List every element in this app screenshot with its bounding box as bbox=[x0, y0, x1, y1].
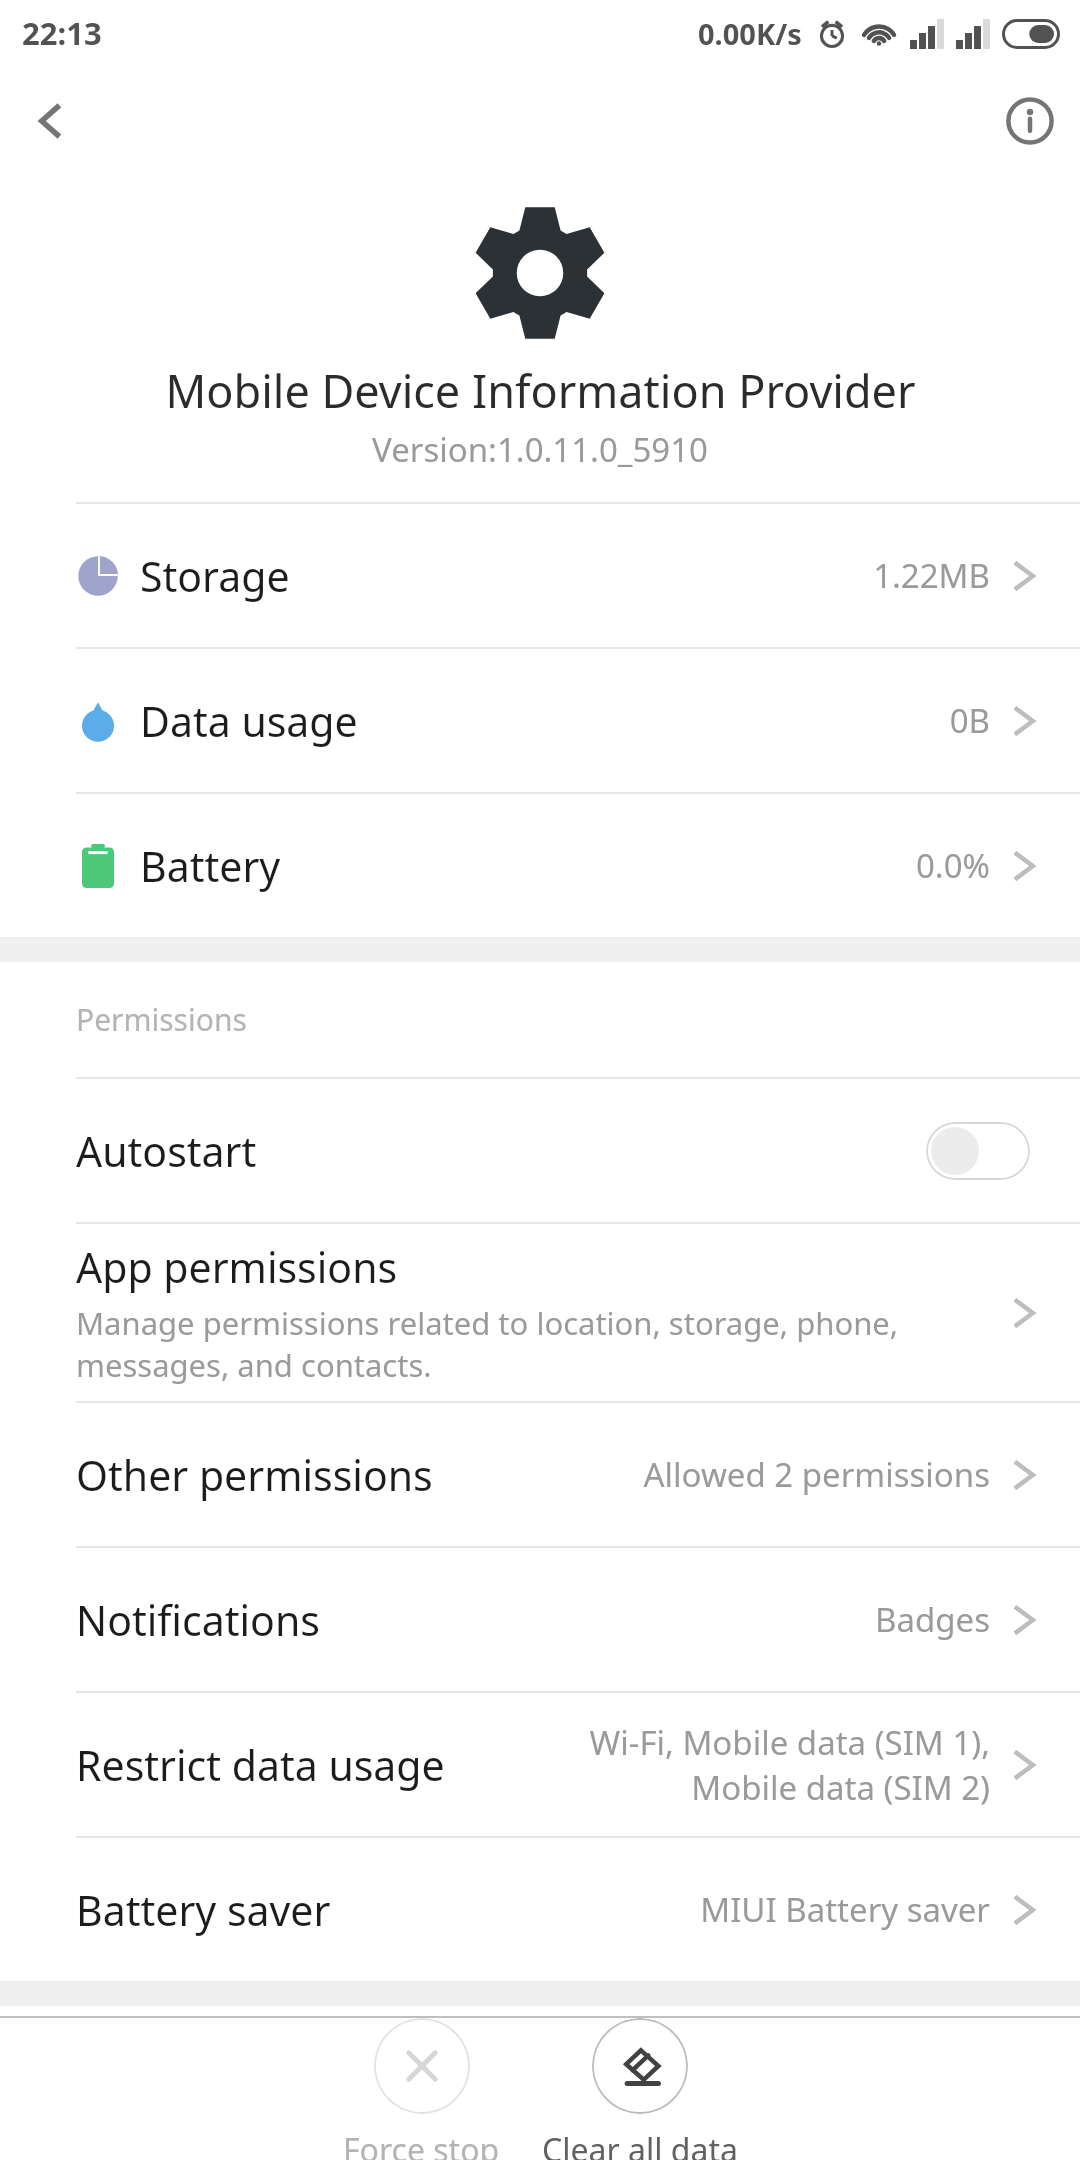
staticText: Restrict data usage bbox=[76, 1737, 445, 1793]
staticText: MIUI Battery saver bbox=[700, 1887, 990, 1932]
staticText: Clear all data bbox=[542, 2128, 738, 2160]
staticText: 0.0% bbox=[915, 843, 990, 888]
staticText: Badges bbox=[875, 1597, 990, 1642]
staticText: 0.00K/s bbox=[698, 14, 802, 53]
staticText: Storage bbox=[140, 548, 290, 604]
staticText: Other permissions bbox=[76, 1447, 433, 1503]
button[interactable]: Battery bbox=[0, 794, 1080, 937]
staticText: Version:1.0.11.0_5910 bbox=[372, 427, 708, 472]
button[interactable]: Data usage bbox=[0, 649, 1080, 792]
button[interactable]: App info bbox=[980, 71, 1080, 171]
staticText: Battery bbox=[140, 838, 281, 894]
button[interactable]: Back bbox=[0, 71, 100, 171]
staticText: Allowed 2 permissions bbox=[643, 1452, 990, 1497]
button[interactable]: Storage bbox=[0, 504, 1080, 647]
staticText: 1.22MB bbox=[873, 553, 990, 598]
button[interactable]: Other permissions bbox=[0, 1403, 1080, 1546]
staticText: Manage permissions related to location, … bbox=[76, 1302, 899, 1386]
button[interactable]: Force stop bbox=[343, 2018, 500, 2160]
staticText: 22:13 bbox=[22, 12, 102, 54]
staticText: Notifications bbox=[76, 1592, 320, 1648]
staticText: Autostart bbox=[76, 1123, 257, 1179]
button[interactable]: Restrict data usage bbox=[0, 1693, 1080, 1836]
staticText: Battery saver bbox=[76, 1882, 331, 1938]
button[interactable]: Clear all data bbox=[542, 2018, 738, 2160]
staticText: Data usage bbox=[140, 693, 358, 749]
staticText: Permissions bbox=[76, 999, 247, 1040]
button[interactable]: Battery saver bbox=[0, 1838, 1080, 1981]
staticText: 0B bbox=[949, 698, 990, 743]
staticText: Force stop bbox=[343, 2128, 500, 2160]
staticText: App permissions bbox=[76, 1239, 398, 1295]
button[interactable]: Notifications bbox=[0, 1548, 1080, 1691]
button[interactable]: Autostart bbox=[0, 1079, 1080, 1222]
staticText: Wi-Fi, Mobile data (SIM 1), Mobile data … bbox=[589, 1720, 990, 1810]
staticText: Mobile Device Information Provider bbox=[165, 360, 916, 421]
button[interactable]: App permissions bbox=[0, 1224, 1080, 1401]
